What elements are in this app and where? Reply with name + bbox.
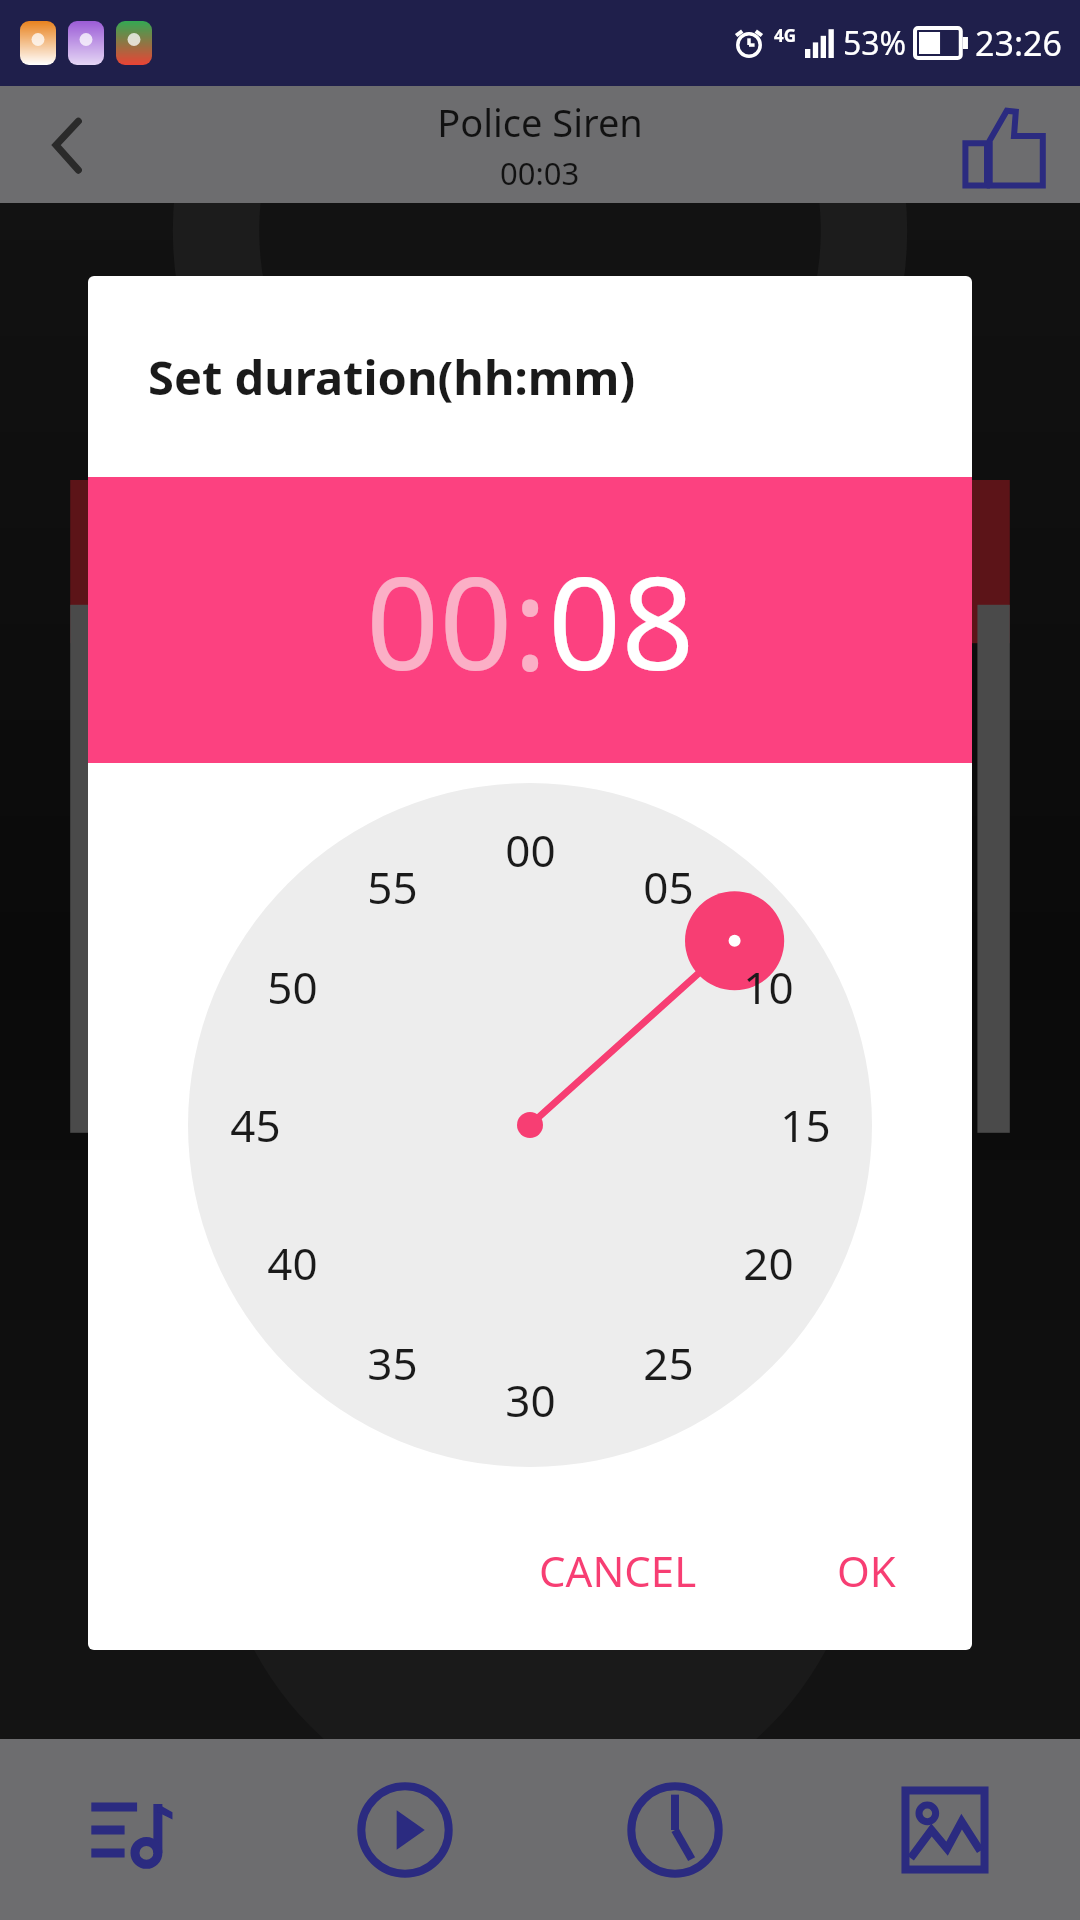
staticText: 4G (774, 24, 797, 47)
staticText: 30 (505, 1370, 556, 1430)
staticText: Set duration(hh:mm) (148, 345, 636, 409)
staticText: 55 (367, 857, 418, 917)
staticText: 00:03 (500, 152, 580, 194)
button[interactable]: CANCEL (509, 1518, 727, 1623)
staticText: 10 (743, 957, 794, 1017)
staticText: 45 (230, 1095, 281, 1155)
button[interactable]: Like (930, 86, 1080, 203)
button[interactable]: Playlist (0, 1739, 270, 1920)
staticText: 05 (643, 857, 694, 917)
staticText: 00 (366, 533, 513, 707)
staticText: 23:26 (975, 20, 1062, 66)
staticText: OK (837, 1542, 896, 1599)
staticText: Police Siren (437, 96, 643, 148)
staticText: CANCEL (539, 1542, 697, 1599)
staticText: : (513, 533, 548, 707)
button[interactable]: Image (810, 1739, 1080, 1920)
staticText: 40 (267, 1233, 318, 1293)
staticText: 50 (267, 957, 318, 1017)
button[interactable]: 00 (366, 533, 513, 707)
button[interactable]: Back (0, 86, 140, 203)
staticText: 15 (780, 1095, 831, 1155)
staticText: 35 (367, 1333, 418, 1393)
button[interactable]: OK (807, 1518, 926, 1623)
button[interactable]: Minute picker (188, 783, 872, 1467)
staticText: 25 (643, 1333, 694, 1393)
staticText: 00 (505, 820, 556, 880)
staticText: 08 (548, 533, 695, 707)
button[interactable]: Timer (540, 1739, 810, 1920)
staticText: 53% (843, 21, 907, 65)
button[interactable]: Play (270, 1739, 540, 1920)
button[interactable]: 08 (548, 533, 695, 707)
staticText: 20 (743, 1233, 794, 1293)
